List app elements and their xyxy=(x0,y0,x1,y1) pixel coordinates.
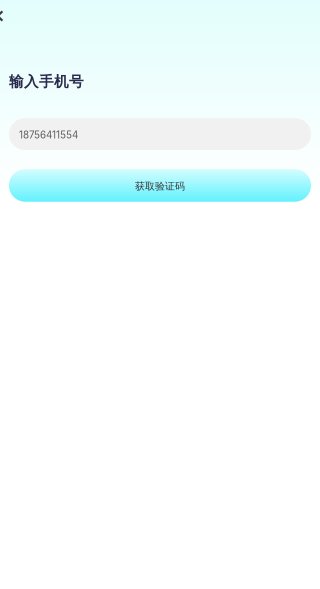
staticText: 18756411554 xyxy=(19,129,78,141)
button[interactable]: 获取验证码 xyxy=(0,150,320,202)
button[interactable]: Back xyxy=(0,0,2,22)
staticText: 获取验证码 xyxy=(135,180,185,192)
staticText: 输入手机号 xyxy=(9,73,84,91)
